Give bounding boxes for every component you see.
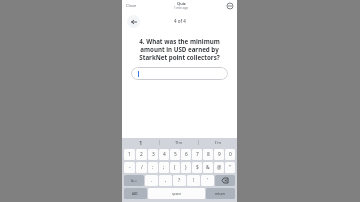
- button[interactable]: /: [136, 162, 147, 173]
- staticText: 3: [152, 151, 155, 158]
- staticText: 1: [128, 151, 131, 158]
- button[interactable]: 5: [170, 149, 180, 160]
- staticText: return: [215, 191, 226, 196]
- button[interactable]: $: [192, 162, 202, 173]
- button[interactable]: ': [201, 175, 214, 186]
- staticText: 4. What was the minimum amount in USD ea…: [132, 37, 227, 61]
- staticText: .: [151, 177, 153, 184]
- staticText: 1 min ago: [174, 6, 189, 10]
- button[interactable]: [131, 67, 228, 80]
- staticText: 8: [207, 151, 210, 158]
- button[interactable]: Back: [127, 15, 140, 28]
- button[interactable]: :: [148, 162, 158, 173]
- button[interactable]: Close: [125, 2, 138, 9]
- button[interactable]: Backspace: [215, 175, 235, 186]
- staticText: ": [229, 164, 231, 171]
- staticText: ?: [178, 177, 181, 184]
- staticText: ': [207, 177, 209, 184]
- staticText: ): [185, 164, 187, 171]
- button[interactable]: (: [170, 162, 180, 173]
- button[interactable]: ;: [159, 162, 169, 173]
- staticText: 4: [163, 151, 166, 158]
- staticText: Close: [126, 3, 137, 8]
- staticText: ,: [165, 177, 167, 184]
- staticText: 7: [196, 151, 199, 158]
- staticText: ;: [163, 164, 165, 171]
- staticText: 4 of 4: [174, 18, 186, 24]
- staticText: 6: [185, 151, 188, 158]
- button[interactable]: .: [145, 175, 158, 186]
- staticText: Quiz: [177, 1, 186, 6]
- staticText: #+=: [131, 179, 137, 183]
- staticText: 0: [229, 151, 232, 158]
- button[interactable]: 1: [124, 149, 135, 160]
- button[interactable]: 2: [136, 149, 147, 160]
- staticText: 9: [218, 151, 221, 158]
- button[interactable]: 9: [214, 149, 224, 160]
- button[interactable]: @: [214, 162, 224, 173]
- staticText: 1: [139, 139, 143, 147]
- staticText: 2: [140, 151, 143, 158]
- button[interactable]: 4: [159, 149, 169, 160]
- button[interactable]: ": [225, 162, 235, 173]
- button[interactable]: 1: [122, 138, 159, 147]
- button[interactable]: ): [181, 162, 191, 173]
- staticText: -: [129, 164, 131, 171]
- button[interactable]: space: [148, 188, 205, 199]
- staticText: !: [193, 177, 195, 184]
- button[interactable]: !: [187, 175, 200, 186]
- staticText: @: [217, 164, 222, 171]
- staticText: (: [174, 164, 176, 171]
- staticText: ABC: [132, 192, 139, 196]
- button[interactable]: &: [203, 162, 213, 173]
- staticText: $: [196, 164, 199, 171]
- button[interactable]: 0: [225, 149, 235, 160]
- staticText: :: [152, 164, 154, 171]
- staticText: /: [141, 164, 143, 171]
- button[interactable]: ABC: [124, 188, 147, 199]
- button[interactable]: More options: [225, 1, 234, 10]
- button[interactable]: 8: [203, 149, 213, 160]
- staticText: 5: [174, 151, 177, 158]
- button[interactable]: ?: [173, 175, 186, 186]
- staticText: I'm: [215, 140, 222, 146]
- button[interactable]: ,: [159, 175, 172, 186]
- button[interactable]: 7: [192, 149, 202, 160]
- button[interactable]: 6: [181, 149, 191, 160]
- button[interactable]: 3: [148, 149, 158, 160]
- button[interactable]: The: [160, 138, 198, 147]
- button[interactable]: -: [124, 162, 135, 173]
- button[interactable]: return: [206, 188, 235, 199]
- staticText: space: [172, 191, 182, 196]
- button[interactable]: I'm: [199, 138, 237, 147]
- staticText: The: [175, 140, 183, 146]
- staticText: &: [206, 164, 210, 171]
- button[interactable]: #+=: [124, 175, 144, 186]
